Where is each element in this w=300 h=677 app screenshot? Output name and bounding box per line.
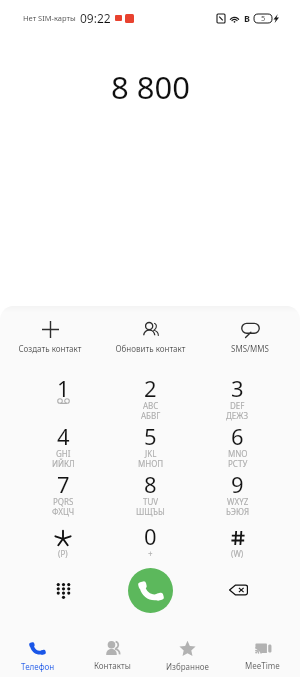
button[interactable]: MeeTime [225,630,300,671]
staticText: 5 [261,13,266,23]
staticText: Телефон [21,661,55,672]
staticText: ДЕЖЗ [226,410,249,421]
staticText: 2 [144,373,157,403]
staticText: 09:22 [80,10,111,26]
staticText: 3 [231,373,244,403]
button[interactable]: 1 [19,373,107,421]
staticText: MeeTime [245,660,280,671]
button[interactable]: Backspace [215,567,261,613]
staticText: Обновить контакт [115,343,186,354]
staticText: Создать контакт [18,343,82,354]
button[interactable]: Создать контакт [0,321,100,354]
staticText: TUV [143,496,159,507]
button[interactable]: Обновить контакт [100,321,200,354]
staticText: (W) [231,548,244,559]
staticText: PQRS [53,496,74,507]
button[interactable]: 4 [19,421,107,469]
staticText: ФХЦЧ [52,506,75,517]
staticText: РСТУ [228,458,248,469]
staticText: 4 [57,421,70,451]
button[interactable]: (P) [19,521,107,569]
staticText: DEF [230,400,245,411]
staticText: Контакты [94,660,131,671]
staticText: GHI [56,448,71,459]
button[interactable]: 2 [107,373,194,421]
staticText: 7 [57,469,70,499]
button[interactable]: (W) [194,521,281,569]
staticText: 1 [57,373,70,403]
staticText: 0 [144,521,157,551]
staticText: ИЙКЛ [52,458,75,469]
staticText: Нет SIM-карты [23,13,76,23]
staticText: 5 [144,421,157,451]
staticText: JKL [145,448,157,459]
button[interactable]: 0 [107,521,194,569]
staticText: 6 [231,421,244,451]
staticText: B [244,12,250,24]
button[interactable]: Call [128,568,173,613]
staticText: ABC [143,400,159,411]
staticText: Избранное [166,661,210,672]
button[interactable]: 3 [194,373,281,421]
staticText: WXYZ [227,496,249,507]
button[interactable]: Hide keypad [40,567,86,613]
button[interactable]: 5 [107,421,194,469]
button[interactable]: SMS/MMS [200,321,300,354]
staticText: MNO [228,448,248,459]
staticText: 9 [231,469,244,499]
button[interactable]: Телефон [0,630,75,672]
staticText: 8 800 [111,66,190,108]
staticText: (P) [58,548,68,559]
staticText: ЬЭЮЯ [226,506,250,517]
button[interactable]: Избранное [150,630,225,672]
button[interactable]: 8 [107,469,194,517]
button[interactable]: 6 [194,421,281,469]
button[interactable]: Контакты [75,630,150,671]
staticText: + [148,548,153,559]
button[interactable]: 9 [194,469,281,517]
staticText: SMS/MMS [231,343,269,354]
staticText: ШЩЪЫ [136,506,165,517]
button[interactable]: 7 [19,469,107,517]
staticText: АБВГ [141,410,161,421]
staticText: МНОП [138,458,164,469]
staticText: 8 [144,469,157,499]
